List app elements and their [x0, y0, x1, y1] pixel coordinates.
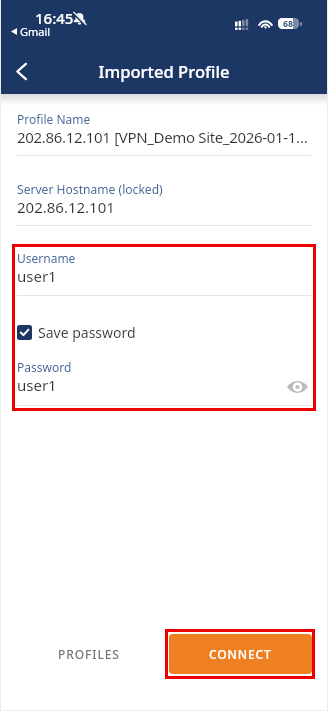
- staticText: user1: [17, 266, 57, 286]
- staticText: 202.86.12.101 [VPN_Demo Site_2026-01-1…: [17, 127, 308, 147]
- staticText: 68: [283, 18, 294, 29]
- staticText: user1: [17, 375, 57, 395]
- button[interactable]: PROFILES: [40, 632, 138, 676]
- staticText: Save password: [38, 323, 136, 342]
- staticText: 16:45: [35, 8, 74, 28]
- staticText: CONNECT: [209, 646, 272, 662]
- staticText: Password: [17, 359, 72, 375]
- button[interactable]: Show password: [285, 375, 309, 399]
- staticText: Gmail: [20, 24, 51, 39]
- staticText: Imported Profile: [0, 60, 328, 83]
- staticText: Username: [17, 250, 76, 266]
- staticText: 202.86.12.101: [17, 197, 115, 217]
- staticText: Server Hostname (locked): [17, 181, 163, 197]
- button[interactable]: Save password: [17, 322, 136, 343]
- staticText: PROFILES: [58, 646, 120, 662]
- staticText: Profile Name: [17, 111, 91, 127]
- button[interactable]: CONNECT: [169, 634, 312, 674]
- button[interactable]: Back: [0, 48, 43, 94]
